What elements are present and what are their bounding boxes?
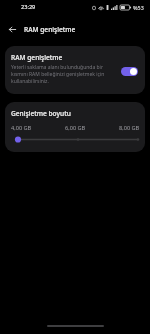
staticText: 6,00 GB — [65, 124, 86, 132]
button[interactable]: RAM genişletme aç kapa — [121, 67, 138, 76]
staticText: RAM genişletme — [11, 53, 63, 62]
button[interactable]: Back — [4, 21, 20, 37]
button[interactable]: Genişletme boyutu kaydırıcısı — [11, 135, 140, 144]
staticText: Genişletme boyutu — [11, 109, 71, 118]
staticText: %53 — [133, 4, 144, 11]
staticText: Yeterli saklama alanı bulunduğunda bir k… — [11, 64, 116, 85]
button[interactable]: RAM genişletme — [5, 46, 145, 94]
staticText: 23:29 — [21, 3, 36, 11]
staticText: RAM genişletme — [24, 25, 76, 34]
staticText: 4,00 GB — [11, 124, 32, 132]
staticText: 8,00 GB — [119, 124, 140, 132]
